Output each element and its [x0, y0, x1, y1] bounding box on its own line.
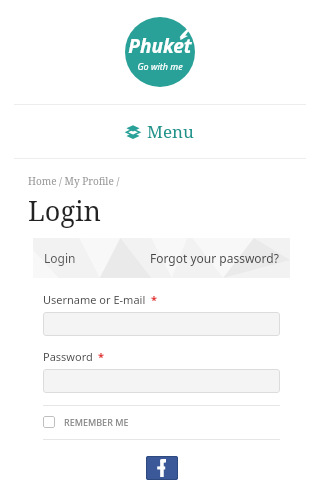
- staticText: REMEMBER ME: [64, 416, 129, 428]
- button[interactable]: Login: [44, 250, 76, 266]
- button[interactable]: [43, 312, 280, 336]
- staticText: *: [98, 349, 104, 364]
- staticText: Home / My Profile /: [28, 174, 120, 188]
- staticText: *: [151, 292, 157, 307]
- staticText: Username or E-mail: [43, 292, 146, 307]
- button[interactable]: [43, 369, 280, 393]
- staticText: Password: [43, 349, 93, 364]
- staticText: Go with me: [137, 60, 183, 72]
- staticText: Login: [28, 192, 101, 229]
- button[interactable]: Sign in with Facebook: [146, 456, 178, 480]
- staticText: Menu: [147, 120, 194, 143]
- staticText: Phuket: [128, 33, 192, 59]
- button[interactable]: Phuket Go with me logo: [125, 17, 195, 87]
- other: Menu: [126, 125, 140, 139]
- button[interactable]: REMEMBER ME: [43, 416, 280, 428]
- button[interactable]: Menu: [0, 105, 320, 158]
- button[interactable]: Forgot your password?: [150, 250, 279, 266]
